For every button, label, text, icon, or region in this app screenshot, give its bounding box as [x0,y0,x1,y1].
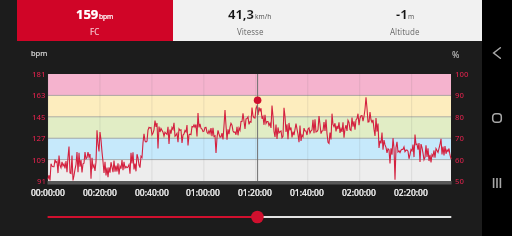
staticText: 00:20:00 [83,187,117,199]
staticText: 80 [455,112,464,123]
staticText: m [408,12,415,21]
staticText: 163 [32,90,46,101]
staticText: Altitude [390,26,420,37]
staticText: 00:00:00 [31,187,65,199]
staticText: 00:40:00 [135,187,169,199]
staticText: 01:20:00 [238,187,272,199]
staticText: % [452,48,460,60]
staticText: 41,3 [228,5,255,23]
staticText: 01:40:00 [290,187,324,199]
staticText: bpm [99,12,114,21]
staticText: 109 [32,155,46,166]
button[interactable]: 159 [17,0,173,41]
button[interactable]: 41,3 [173,0,327,41]
button[interactable]: Recent apps [482,168,512,198]
staticText: 02:20:00 [394,187,428,199]
staticText: 60 [455,155,464,166]
button[interactable]: Back [482,38,512,68]
staticText: 91 [37,176,46,187]
staticText: 90 [455,90,464,101]
staticText: bpm [31,48,48,58]
staticText: Vitesse [237,26,264,37]
staticText: 50 [455,176,464,187]
staticText: 02:00:00 [342,187,376,199]
staticText: 127 [32,133,46,144]
staticText: km/h [255,12,272,21]
staticText: FC [90,26,100,37]
button[interactable]: Home [482,103,512,133]
staticText: 100 [455,69,469,80]
staticText: 181 [32,69,46,80]
staticText: 145 [32,112,46,123]
staticText: 01:00:00 [186,187,220,199]
button[interactable]: -1 [327,0,482,41]
staticText: 159 [76,5,99,23]
staticText: 70 [455,133,464,144]
staticText: -1 [396,5,408,23]
